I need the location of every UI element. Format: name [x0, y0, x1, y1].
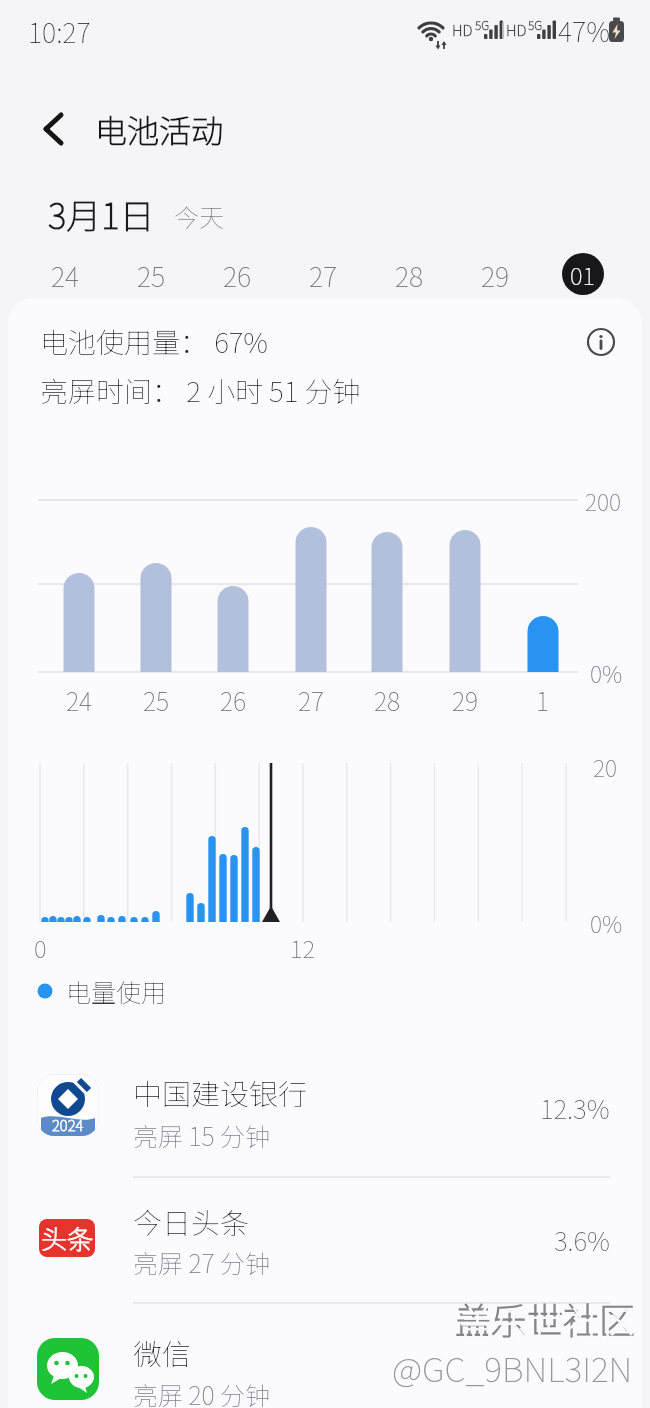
button[interactable]: 26 [204, 248, 270, 302]
staticText: 电量使用 [66, 973, 167, 1009]
staticText: 26 [223, 256, 252, 295]
staticText: 中国建设银行 [133, 1071, 308, 1113]
staticText: 亮屏 27 分钟 [133, 1244, 271, 1280]
staticText: 47% [558, 11, 610, 50]
button[interactable]: 01 [562, 253, 604, 295]
button[interactable] [30, 105, 78, 153]
button[interactable]: 24 [32, 248, 98, 302]
button[interactable]: 29 [462, 248, 528, 302]
button[interactable]: 27 [290, 248, 356, 302]
staticText: @GC_9BNL3I2N [392, 1343, 633, 1392]
staticText: 25 [137, 256, 166, 295]
staticText: 3.6% [554, 1221, 610, 1259]
staticText: 24 [66, 682, 93, 718]
staticText: 12 [290, 930, 316, 965]
button[interactable]: 25 [118, 248, 184, 302]
staticText: 200 [585, 484, 621, 517]
staticText: 20 [593, 750, 617, 783]
staticText: 电池活动 [95, 106, 224, 152]
staticText: 27 [298, 682, 325, 718]
staticText: HD [506, 19, 527, 41]
staticText: 今日头条 [133, 1200, 250, 1242]
staticText: 1 [536, 682, 550, 718]
staticText: 盖乐世社区 [459, 1296, 640, 1348]
staticText: 盖乐世社区 [455, 1292, 636, 1344]
staticText: HD [452, 19, 473, 41]
button[interactable] [20, 1044, 630, 1170]
staticText: 25 [143, 682, 170, 718]
staticText: 0 [34, 930, 47, 965]
staticText: 27 [309, 256, 338, 295]
staticText: 电池使用量： 67% [40, 321, 268, 362]
staticText: 亮屏 15 分钟 [133, 1117, 271, 1153]
staticText: 3月1日 [48, 188, 155, 239]
staticText: 亮屏时间： 2 小时 51 分钟 [40, 370, 361, 411]
staticText: 29 [452, 682, 479, 718]
staticText: 0% [590, 656, 623, 689]
staticText: 5G [528, 16, 543, 33]
button[interactable] [584, 325, 618, 359]
staticText: 29 [481, 256, 510, 295]
staticText: 26 [220, 682, 247, 718]
button[interactable] [20, 1170, 630, 1296]
staticText: 10:27 [28, 12, 91, 51]
staticText: 28 [395, 256, 424, 295]
staticText: 微信 [133, 1331, 192, 1373]
staticText: 2024 [52, 1114, 84, 1136]
staticText: 头条 [41, 1219, 94, 1257]
staticText: 28 [374, 682, 401, 718]
button[interactable] [20, 1296, 630, 1408]
staticText: 今天 [174, 198, 225, 234]
staticText: 01 [570, 257, 596, 292]
staticText: 亮屏 20 分钟 [133, 1376, 271, 1408]
button[interactable]: 28 [376, 248, 442, 302]
staticText: 0% [590, 906, 623, 939]
staticText: 5G [475, 16, 490, 33]
staticText: 24 [51, 256, 80, 295]
staticText: 12.3% [540, 1089, 610, 1127]
